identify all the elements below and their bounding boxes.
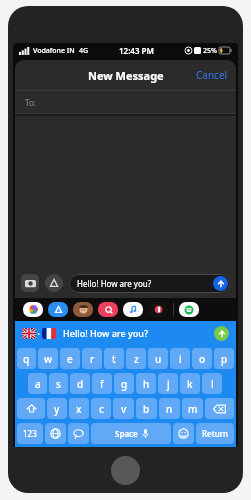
- button[interactable]: Send: [213, 276, 228, 291]
- staticText: c: [99, 402, 104, 416]
- button[interactable]: v: [113, 398, 134, 419]
- button[interactable]: App: [48, 302, 68, 317]
- button[interactable]: To:: [15, 91, 236, 113]
- staticText: e: [67, 352, 73, 366]
- button[interactable]: Backspace: [205, 398, 234, 419]
- button[interactable]: m: [182, 398, 203, 419]
- button[interactable]: j: [158, 373, 178, 394]
- staticText: 123: [23, 428, 37, 439]
- staticText: 25%: [203, 46, 217, 56]
- staticText: To:: [25, 97, 36, 108]
- staticText: k: [187, 377, 193, 391]
- button[interactable]: t: [104, 348, 124, 369]
- button[interactable]: Globe: [45, 423, 66, 444]
- button[interactable]: Space: [91, 423, 171, 444]
- staticText: x: [76, 402, 82, 416]
- staticText: p: [221, 352, 228, 366]
- button[interactable]: g: [114, 373, 134, 394]
- staticText: Return: [202, 428, 229, 439]
- staticText: t: [112, 352, 116, 366]
- staticText: u: [155, 352, 162, 366]
- staticText: r: [90, 352, 95, 366]
- button[interactable]: App: [23, 302, 43, 317]
- staticText: l: [211, 377, 214, 391]
- button[interactable]: i: [170, 348, 190, 369]
- staticText: f: [100, 377, 104, 391]
- button[interactable]: 123: [17, 423, 43, 444]
- staticText: 12:43 PM: [119, 45, 154, 56]
- staticText: w: [44, 352, 53, 366]
- staticText: Cancel: [196, 68, 228, 82]
- staticText: n: [166, 402, 173, 416]
- staticText: v: [121, 402, 127, 416]
- staticText: h: [143, 377, 150, 391]
- staticText: g: [121, 377, 128, 391]
- staticText: q: [23, 352, 30, 366]
- staticText: New Message: [88, 68, 164, 83]
- button[interactable]: App: [73, 302, 93, 317]
- button[interactable]: Camera: [21, 274, 39, 292]
- staticText: y: [54, 402, 60, 416]
- button[interactable]: o: [192, 348, 212, 369]
- staticText: Hello! How are you?: [77, 278, 213, 289]
- button[interactable]: New Message: [86, 66, 166, 85]
- button[interactable]: b: [136, 398, 157, 419]
- button[interactable]: Hello! How are you?: [69, 274, 230, 293]
- button[interactable]: l: [202, 373, 222, 394]
- staticText: 4G: [79, 46, 89, 56]
- staticText: Hello! How are you?: [63, 327, 214, 339]
- button[interactable]: App: [98, 302, 118, 317]
- staticText: s: [56, 377, 61, 391]
- button[interactable]: r: [82, 348, 102, 369]
- button[interactable]: z: [126, 348, 146, 369]
- button[interactable]: Shift: [17, 398, 45, 419]
- staticText: a: [35, 377, 41, 391]
- button[interactable]: Translate: [214, 326, 229, 341]
- staticText: z: [134, 352, 139, 366]
- staticText: b: [143, 402, 150, 416]
- button[interactable]: e: [60, 348, 80, 369]
- button[interactable]: Language: [22, 328, 56, 339]
- button[interactable]: n: [159, 398, 180, 419]
- button[interactable]: a: [28, 373, 47, 394]
- button[interactable]: Dictation: [68, 423, 89, 444]
- button[interactable]: u: [148, 348, 168, 369]
- button[interactable]: Home: [111, 456, 140, 485]
- button[interactable]: w: [38, 348, 58, 369]
- button[interactable]: Emoji: [173, 423, 194, 444]
- button[interactable]: y: [47, 398, 67, 419]
- staticText: m: [188, 402, 198, 416]
- button[interactable]: App Store: [45, 274, 63, 292]
- button[interactable]: x: [69, 398, 89, 419]
- button[interactable]: Cancel: [188, 64, 236, 86]
- button[interactable]: s: [49, 373, 68, 394]
- staticText: o: [199, 352, 206, 366]
- button[interactable]: c: [91, 398, 111, 419]
- staticText: Vodafone IN: [33, 46, 75, 56]
- button[interactable]: App: [179, 302, 199, 317]
- button[interactable]: q: [17, 348, 36, 369]
- button[interactable]: p: [214, 348, 234, 369]
- staticText: i: [179, 352, 182, 366]
- button[interactable]: d: [70, 373, 90, 394]
- staticText: j: [167, 377, 170, 391]
- button[interactable]: k: [180, 373, 200, 394]
- button[interactable]: Return: [196, 423, 234, 444]
- button[interactable]: f: [92, 373, 112, 394]
- button[interactable]: h: [136, 373, 156, 394]
- button[interactable]: App: [148, 302, 168, 317]
- staticText: Space: [115, 428, 138, 439]
- button[interactable]: App: [123, 302, 143, 317]
- staticText: d: [77, 377, 84, 391]
